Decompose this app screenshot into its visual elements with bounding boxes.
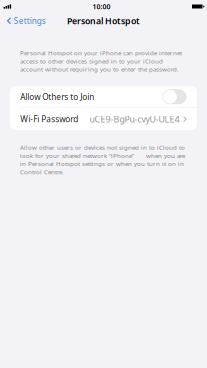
- staticText: 10:00: [92, 2, 110, 11]
- staticText: Personal Hotspot on your iPhone can prov…: [20, 49, 182, 73]
- button[interactable]: Allow Others to Join: [10, 86, 197, 107]
- button[interactable]: Wi-Fi Password: [10, 108, 197, 130]
- staticText: Allow Others to Join: [20, 91, 94, 102]
- staticText: uCE9-BgPu-cvyU-ULE4: [89, 113, 179, 125]
- staticText: Wi-Fi Password: [20, 114, 78, 125]
- staticText: Settings: [14, 15, 46, 26]
- staticText: Allow other users or devices not signed …: [20, 143, 185, 176]
- button[interactable]: Settings: [0, 13, 51, 29]
- staticText: Personal Hotspot: [67, 15, 140, 27]
